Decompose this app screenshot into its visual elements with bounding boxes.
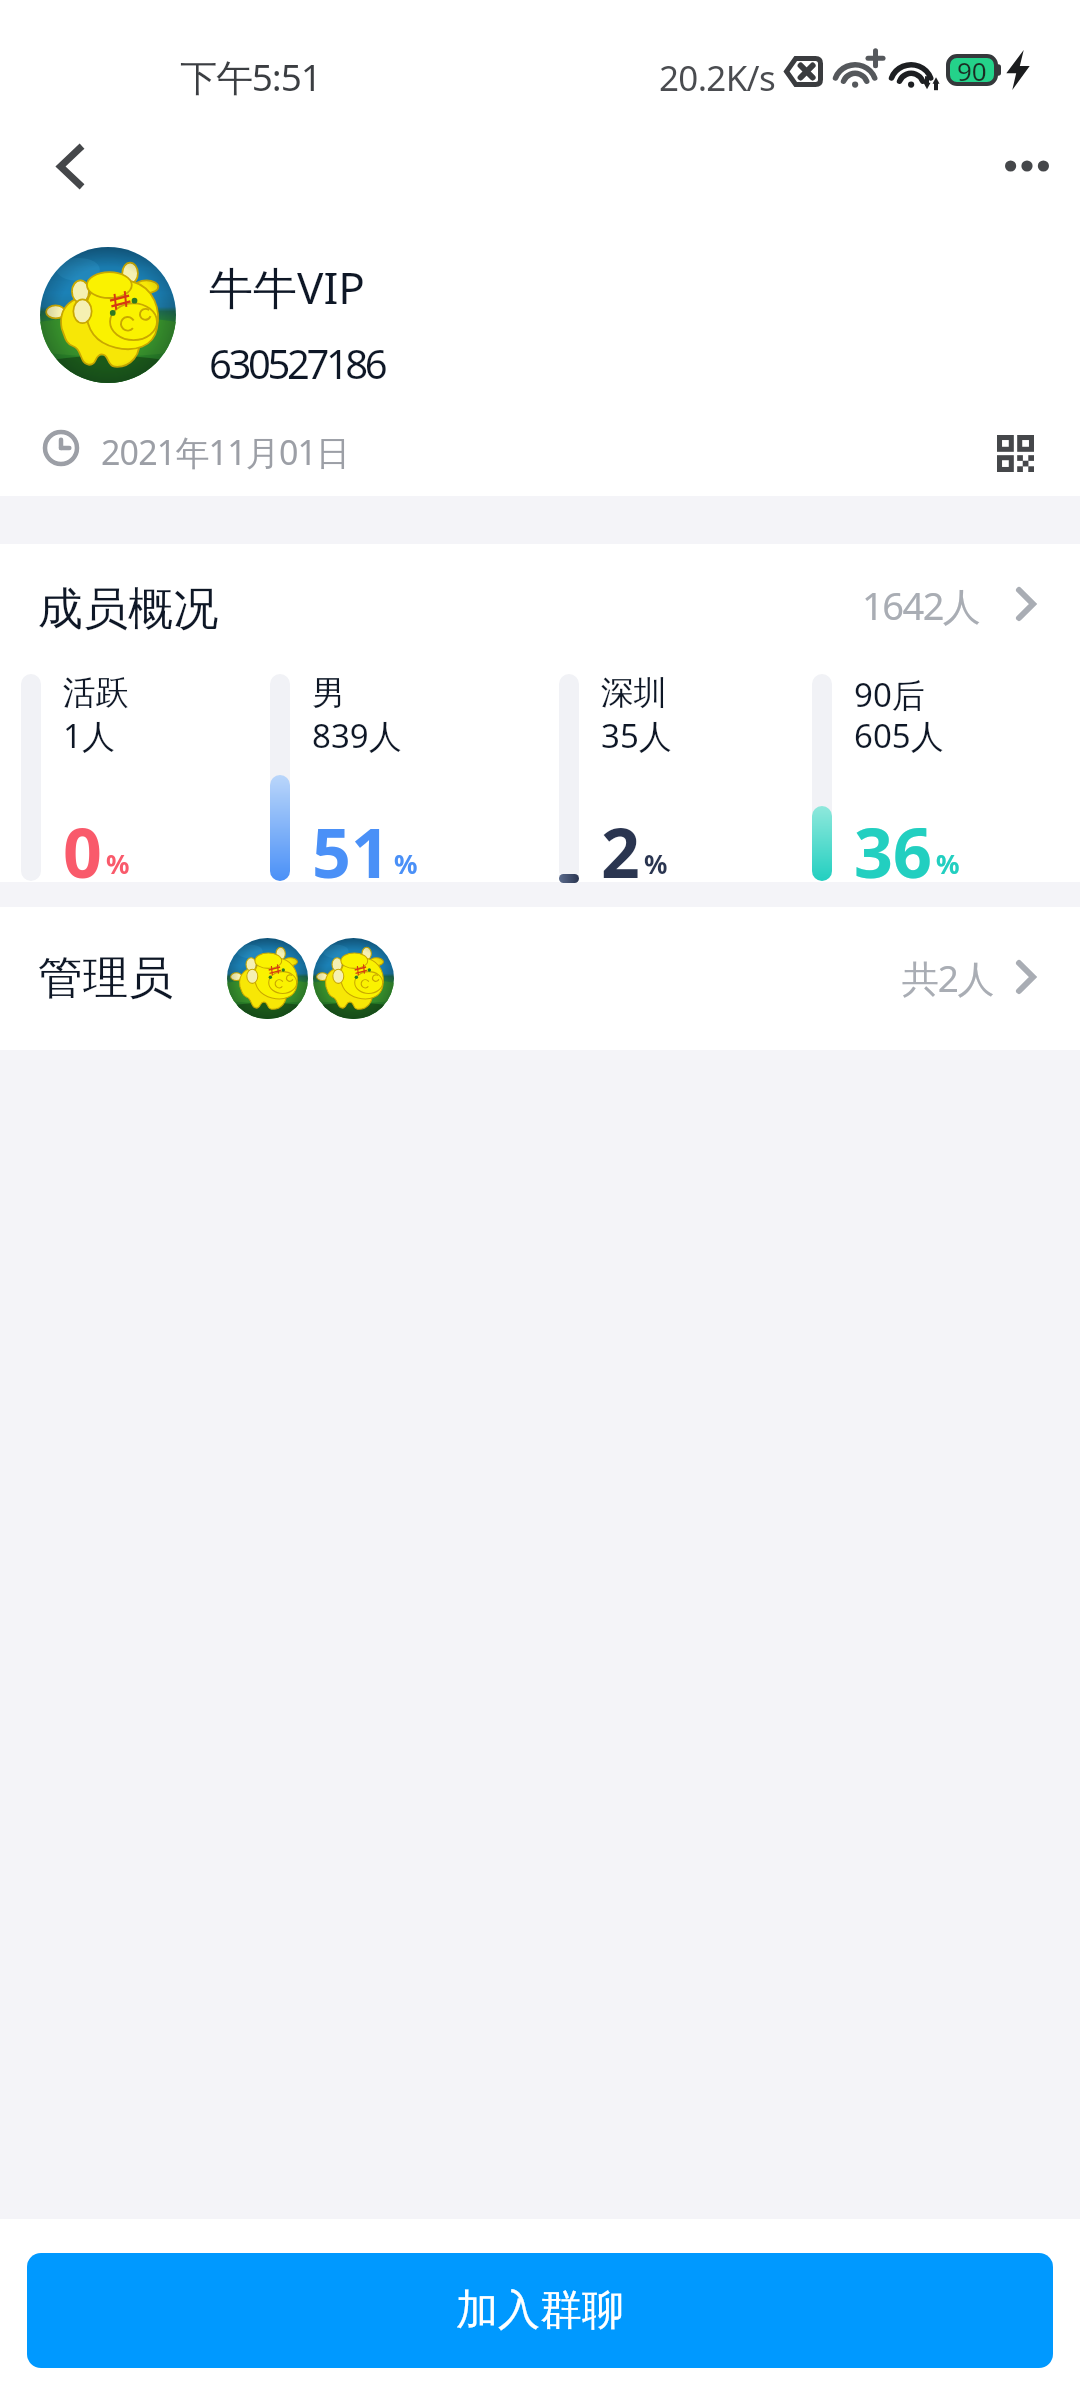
staticText: 2021年11月01日 (101, 429, 350, 475)
staticText: 2 (601, 805, 640, 881)
staticText: 1642人 (862, 579, 980, 631)
staticText: % (106, 846, 130, 881)
button[interactable]: Back (28, 124, 112, 208)
staticText: 51 (312, 805, 390, 881)
staticText: % (394, 846, 418, 881)
button[interactable]: 2021年11月01日 (0, 400, 1080, 496)
staticText: 0 (63, 805, 102, 881)
staticText: 男 (312, 672, 345, 713)
button[interactable]: 牛牛VIP (0, 220, 1080, 400)
staticText: % (644, 846, 668, 881)
button[interactable]: More options (985, 124, 1069, 208)
staticText: 839人 (312, 713, 402, 758)
staticText: 35人 (601, 713, 672, 758)
staticText: 1人 (63, 713, 115, 758)
staticText: 活跃 (63, 672, 129, 713)
staticText: 加入群聊 (456, 2284, 624, 2337)
staticText: 20.2K/s (659, 54, 775, 102)
staticText: 90 (957, 53, 987, 88)
staticText: 90后 (854, 672, 925, 713)
staticText: 成员概况 (38, 581, 218, 638)
staticText: 630527186 (209, 336, 385, 390)
staticText: 深圳 (601, 672, 667, 713)
button[interactable]: 成员概况 (0, 544, 1080, 674)
staticText: 605人 (854, 713, 944, 758)
button[interactable]: 管理员 (0, 907, 1080, 1050)
staticText: 管理员 (38, 950, 173, 1007)
staticText: % (936, 846, 960, 881)
staticText: 36 (854, 805, 932, 881)
staticText: 下午5:51 (180, 51, 321, 102)
staticText: 共2人 (902, 952, 994, 1003)
button[interactable]: QR code (973, 411, 1057, 495)
button[interactable]: 加入群聊 (27, 2253, 1053, 2368)
staticText: 牛牛VIP (209, 257, 365, 317)
